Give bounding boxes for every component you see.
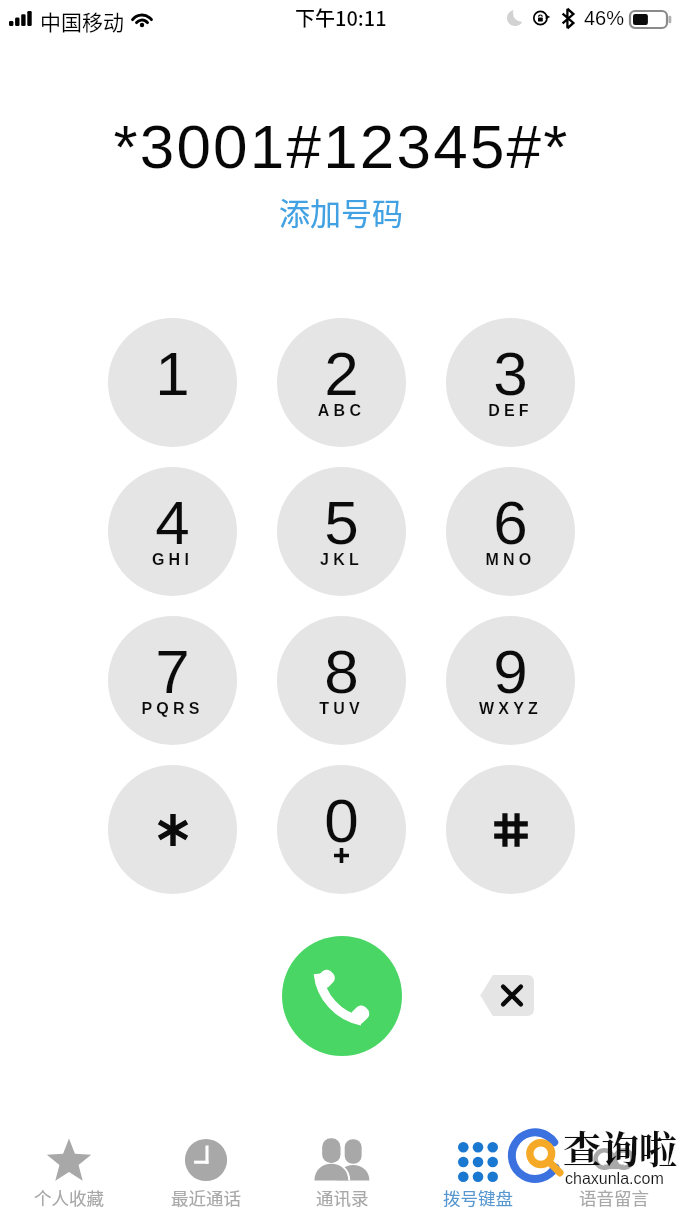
staticText: 语音留言 [579, 1185, 649, 1210]
staticText: 3 [446, 339, 575, 408]
staticText: 最近通话 [171, 1185, 241, 1210]
staticText: 4 [108, 488, 237, 557]
staticText: 拨号键盘 [443, 1185, 513, 1210]
staticText: 通讯录 [316, 1185, 369, 1210]
button[interactable]: 2 [277, 318, 406, 447]
button[interactable] [108, 765, 237, 894]
button[interactable]: 语音留言 [546, 1128, 682, 1212]
staticText: JKL [277, 551, 406, 569]
button[interactable]: 9 [446, 616, 575, 745]
button[interactable]: 6 [446, 467, 575, 596]
button[interactable]: 个人收藏 [0, 1128, 137, 1212]
staticText: 下午10:11 [295, 3, 387, 32]
staticText: 6 [446, 488, 575, 557]
staticText: PQRS [108, 700, 237, 718]
staticText: chaxunla.com [565, 1170, 664, 1188]
button[interactable]: 8 [277, 616, 406, 745]
staticText: GHI [108, 551, 237, 569]
staticText: TUV [277, 700, 406, 718]
staticText: DEF [446, 402, 575, 420]
button[interactable]: 3 [446, 318, 575, 447]
button[interactable]: 1 [108, 318, 237, 447]
button[interactable]: 通讯录 [274, 1128, 410, 1212]
staticText: 1 [108, 339, 237, 408]
button[interactable]: Call [282, 936, 402, 1056]
staticText: 5 [277, 488, 406, 557]
staticText: 9 [446, 637, 575, 706]
staticText: 46% [584, 7, 625, 29]
staticText: 7 [108, 637, 237, 706]
staticText: 添加号码 [279, 189, 403, 229]
staticText: 2 [277, 339, 406, 408]
staticText: 中国移动 [40, 6, 124, 36]
staticText: 0 [277, 786, 406, 855]
button[interactable]: 添加号码 [0, 189, 682, 229]
staticText: ABC [277, 402, 406, 420]
button[interactable]: 0 [277, 765, 406, 894]
button[interactable]: 4 [108, 467, 237, 596]
button[interactable]: 7 [108, 616, 237, 745]
button[interactable]: 拨号键盘 [410, 1128, 546, 1212]
button[interactable] [446, 765, 575, 894]
staticText: *3001#12345#* [113, 112, 570, 178]
staticText: 查询啦 [563, 1119, 678, 1174]
button[interactable]: 5 [277, 467, 406, 596]
button[interactable]: Delete [479, 975, 534, 1016]
staticText: 8 [277, 637, 406, 706]
staticText: WXYZ [446, 700, 575, 718]
button[interactable]: 最近通话 [137, 1128, 274, 1212]
staticText: 个人收藏 [34, 1185, 104, 1210]
staticText: MNO [446, 551, 575, 569]
